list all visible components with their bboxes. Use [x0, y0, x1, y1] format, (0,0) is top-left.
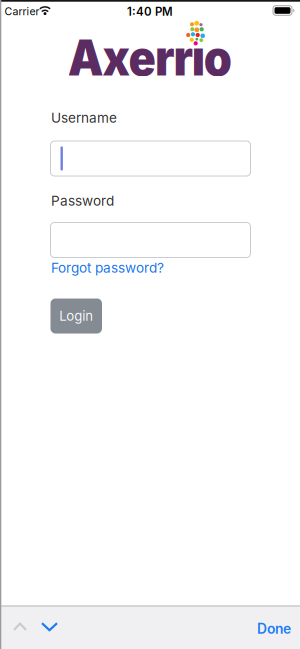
button[interactable]: Password text field [50, 222, 250, 257]
button[interactable]: Previous field [14, 624, 26, 630]
button[interactable]: Username text field [50, 141, 250, 176]
staticText: Forgot password? [51, 259, 164, 276]
button[interactable]: Forgot password? [51, 259, 164, 276]
button[interactable]: Login [50, 298, 102, 333]
staticText: Axerrıo [60, 28, 239, 87]
staticText: Done [257, 620, 291, 637]
button[interactable]: Done [257, 620, 291, 637]
button[interactable]: Next field [42, 623, 57, 630]
staticText: 1:40 PM [127, 4, 173, 18]
staticText: Login [59, 308, 93, 324]
staticText: Username [51, 109, 117, 126]
staticText: Password [51, 192, 114, 209]
staticText: Carrier [4, 5, 39, 18]
